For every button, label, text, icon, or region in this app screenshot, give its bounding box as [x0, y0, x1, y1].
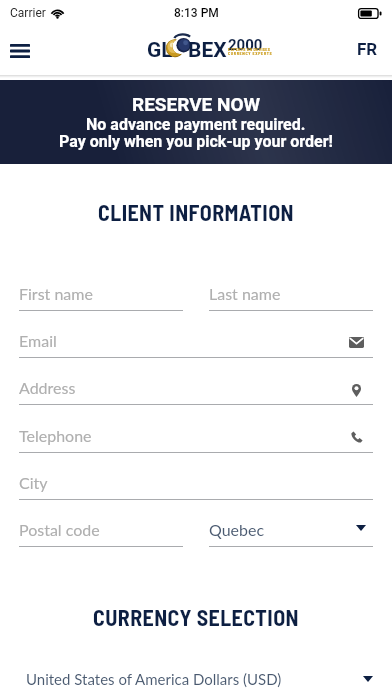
staticText: 8:13 PM: [174, 6, 219, 20]
staticText: First name: [19, 284, 93, 303]
button[interactable]: Address: [19, 370, 373, 405]
button[interactable]: City: [19, 465, 373, 500]
staticText: Quebec: [209, 520, 265, 539]
staticText: Carrier: [10, 6, 46, 20]
staticText: RESERVE NOW: [132, 93, 261, 115]
staticText: Postal code: [19, 520, 100, 539]
button[interactable]: Quebec: [209, 512, 373, 547]
staticText: GL: [147, 38, 173, 63]
button[interactable]: Last name: [209, 276, 373, 311]
button[interactable]: FR: [357, 39, 378, 59]
button[interactable]: Telephone: [19, 418, 373, 453]
staticText: Last name: [209, 284, 281, 303]
button[interactable]: Email: [19, 323, 373, 358]
button[interactable]: United States of America Dollars (USD): [19, 662, 373, 696]
staticText: Email: [19, 331, 57, 350]
staticText: Pay only when you pick-up your order!: [59, 132, 333, 151]
button[interactable]: GL: [147, 31, 263, 61]
staticText: 2000: [228, 36, 263, 54]
button[interactable]: Postal code: [19, 512, 183, 547]
staticText: Telephone: [19, 426, 92, 445]
button[interactable]: Open navigation menu: [1, 32, 39, 70]
staticText: United States of America Dollars (USD): [26, 670, 282, 688]
staticText: FR: [357, 39, 378, 59]
button[interactable]: First name: [19, 276, 183, 311]
staticText: City: [19, 473, 48, 492]
staticText: BEX: [188, 38, 227, 63]
staticText: CURRENCY EXPERTS: [228, 51, 273, 56]
staticText: Address: [19, 378, 76, 397]
staticText: CLIENT INFORMATION: [0, 199, 392, 225]
staticText: No advance payment required.: [86, 115, 306, 134]
staticText: CURRENCY SELECTION: [0, 604, 392, 630]
staticText: EXPERTS EN DEVISES: [228, 47, 271, 52]
